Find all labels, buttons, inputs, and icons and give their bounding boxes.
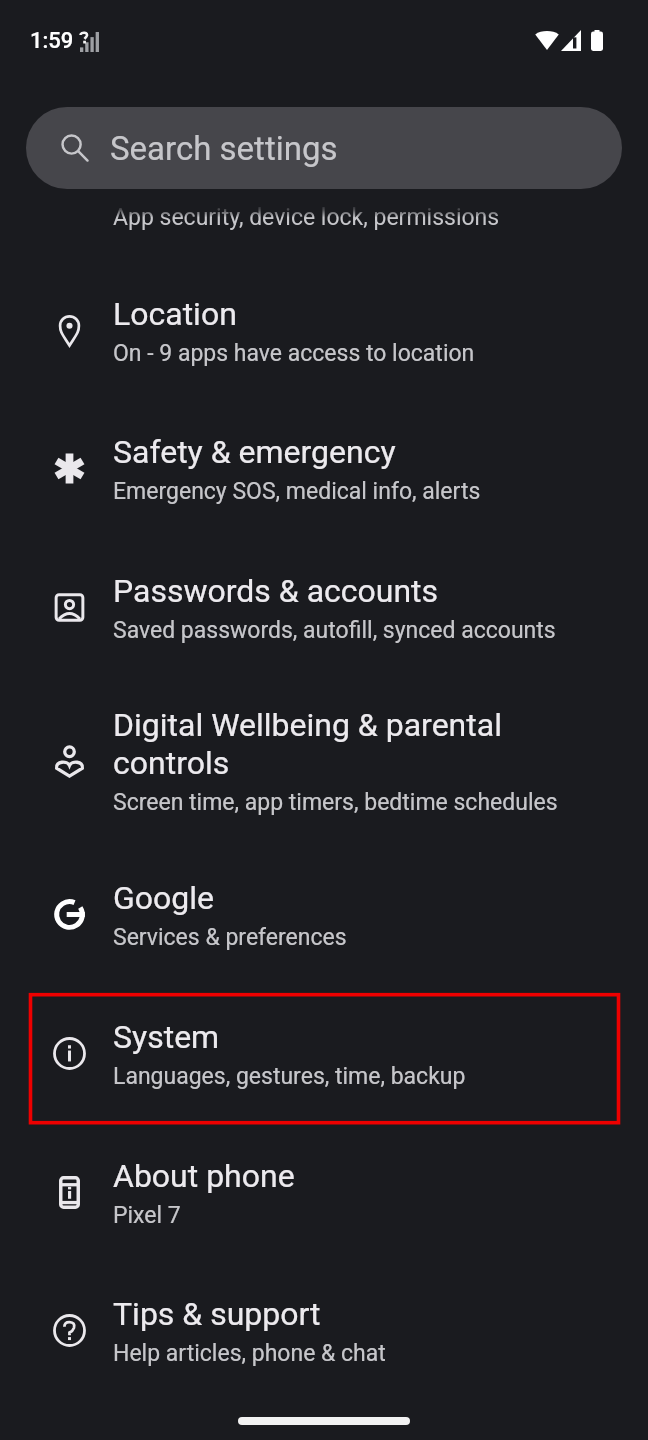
staticText: 1:59 <box>30 28 74 54</box>
button[interactable]: Safety & emergency <box>0 399 648 538</box>
staticText: Languages, gestures, time, backup <box>113 1063 466 1090</box>
staticText: About phone <box>113 1157 295 1195</box>
staticText: Digital Wellbeing & parental controls <box>113 706 575 782</box>
staticText: Tips & support <box>113 1295 321 1333</box>
staticText: Help articles, phone & chat <box>113 1340 386 1367</box>
staticText: On - 9 apps have access to location <box>113 340 475 367</box>
button[interactable]: Location <box>0 261 648 400</box>
staticText: Pixel 7 <box>113 1202 181 1229</box>
button[interactable]: Search settings <box>26 107 622 189</box>
button[interactable]: Digital Wellbeing & parental controls <box>0 672 648 849</box>
other: Battery full <box>591 30 603 51</box>
other: Cellular signal <box>561 30 581 51</box>
staticText: System <box>113 1018 220 1056</box>
staticText: Screen time, app timers, bedtime schedul… <box>113 789 558 816</box>
staticText: Google <box>113 879 215 917</box>
button[interactable]: Google <box>0 845 648 984</box>
staticText: Saved passwords, autofill, synced accoun… <box>113 617 556 644</box>
staticText: Location <box>113 295 237 333</box>
staticText: Passwords & accounts <box>113 572 439 610</box>
button[interactable]: About phone <box>0 1123 648 1262</box>
button[interactable]: Passwords & accounts <box>0 538 648 677</box>
staticText: Services & preferences <box>113 924 347 951</box>
other: Mobile signal, unknown network <box>80 32 99 52</box>
staticText: Safety & emergency <box>113 433 396 471</box>
other: Wi-Fi <box>535 30 559 50</box>
button[interactable]: Tips & support <box>0 1261 648 1400</box>
staticText: App security, device lock, permissions <box>113 204 500 231</box>
button[interactable]: System <box>0 984 648 1123</box>
staticText: Search settings <box>110 129 338 168</box>
staticText: Emergency SOS, medical info, alerts <box>113 478 481 505</box>
